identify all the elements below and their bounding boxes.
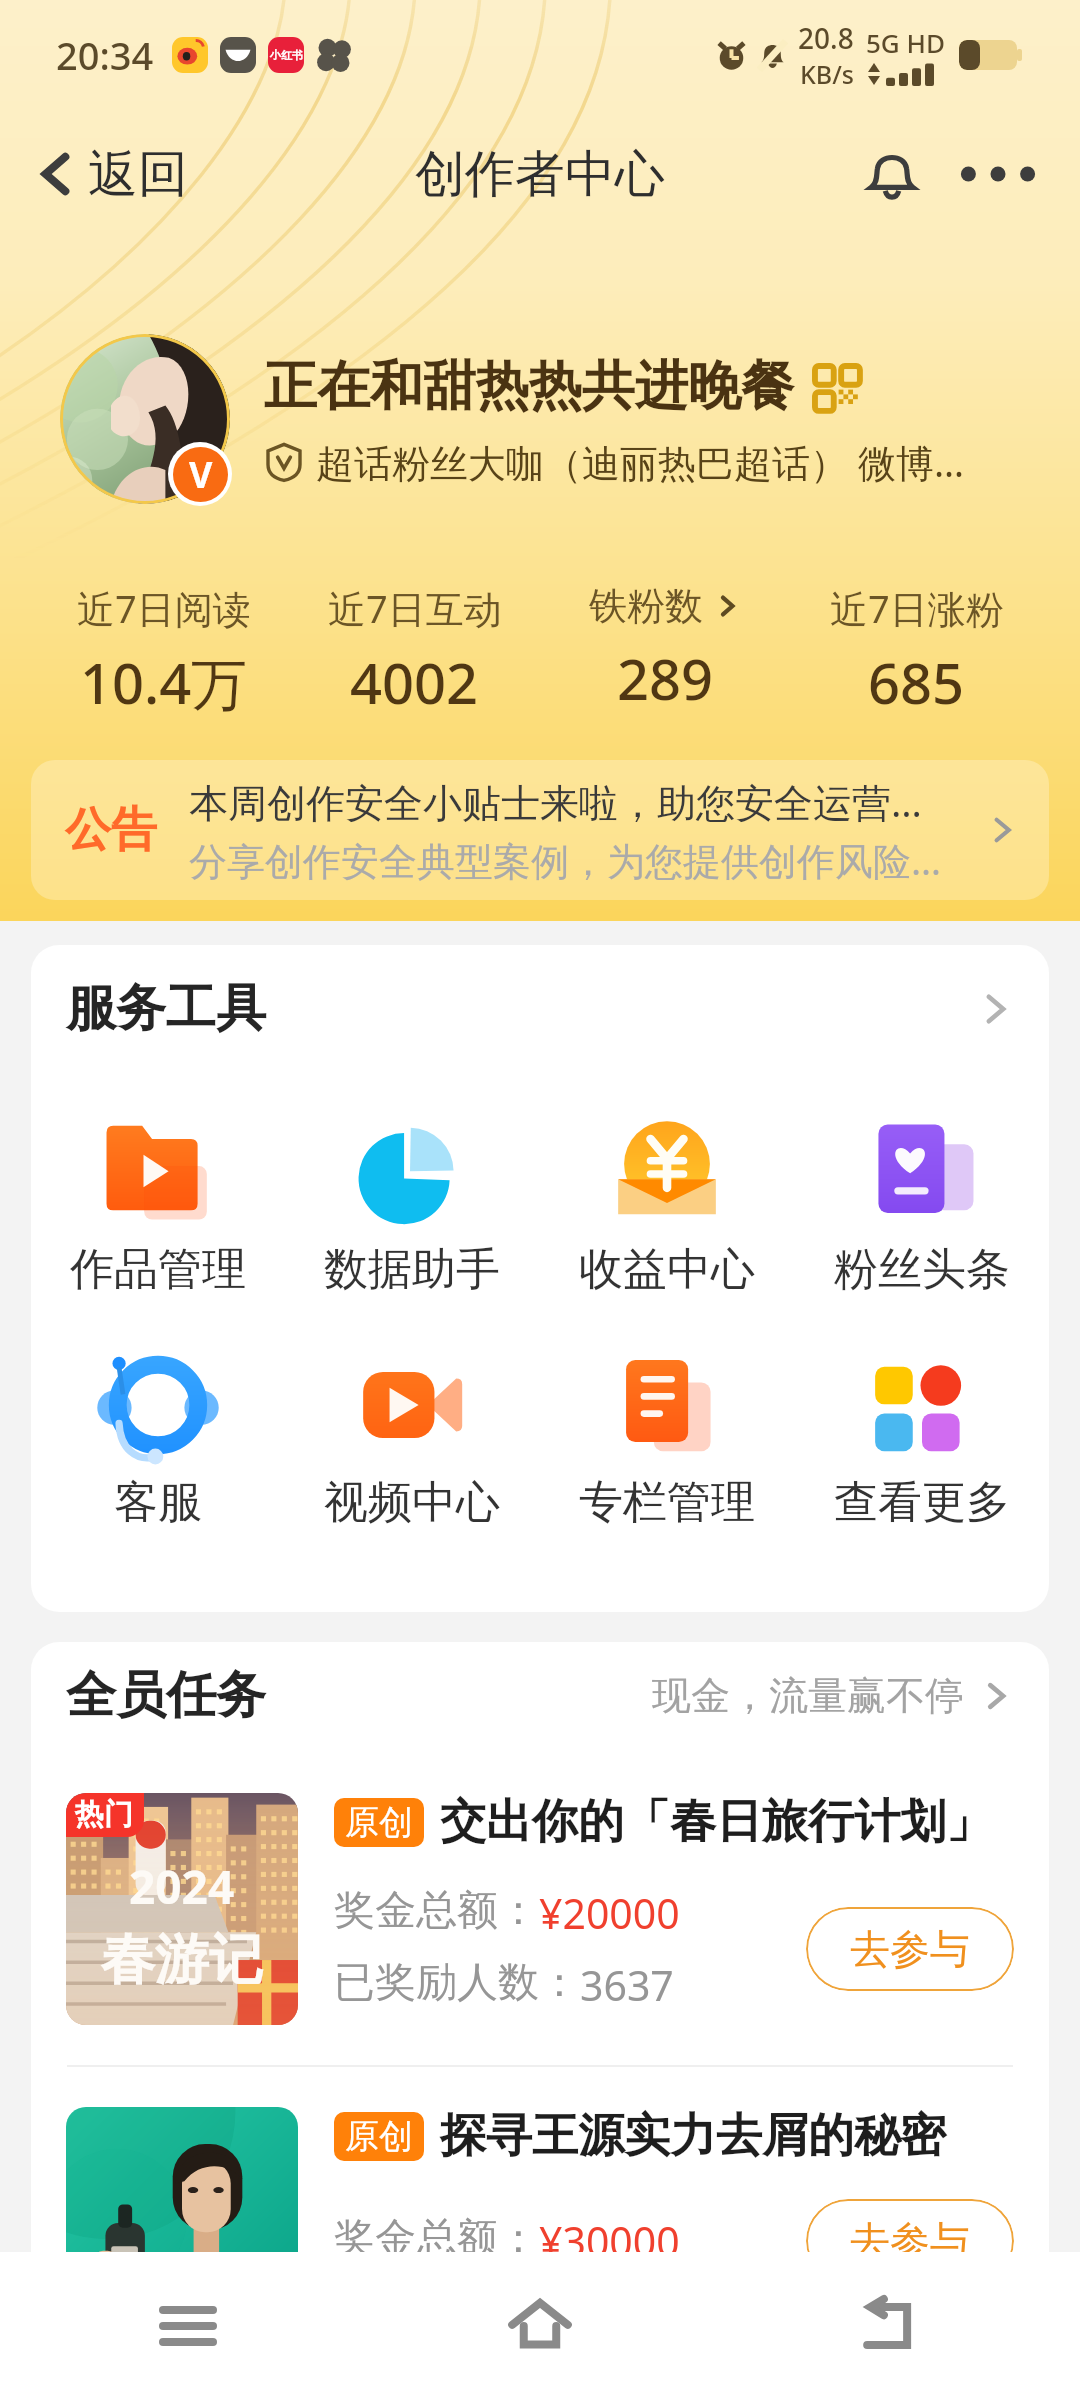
button[interactable]: V: [60, 334, 1040, 506]
button[interactable]: 视频中心: [285, 1339, 539, 1530]
staticText: 3637: [580, 1957, 674, 2013]
button[interactable]: 专栏管理: [539, 1339, 794, 1530]
staticText: 原创: [345, 2115, 413, 2158]
button[interactable]: 去参与: [806, 1907, 1014, 1991]
button[interactable]: Back: [832, 2266, 952, 2386]
button[interactable]: Recent apps: [128, 2266, 248, 2386]
staticText: V: [189, 450, 213, 499]
staticText: 创作者中心: [415, 143, 665, 206]
staticText: 奖金总额：: [334, 2213, 539, 2265]
button[interactable]: 原创: [31, 2067, 1049, 2379]
staticText: 热门: [75, 1796, 133, 1833]
button[interactable]: 公告: [31, 760, 1049, 900]
staticText: 4002: [350, 644, 479, 720]
staticText: 正在和甜热热共进晚餐: [264, 353, 794, 420]
staticText: 近7日互动: [328, 582, 502, 634]
staticText: 专栏管理: [579, 1475, 755, 1530]
staticText: 10.4万: [80, 644, 248, 720]
staticText: ¥30000: [539, 2213, 680, 2269]
staticText: 铁粉数: [589, 582, 703, 630]
staticText: 全员任务: [66, 1664, 266, 1727]
staticText: 原创: [345, 1801, 413, 1844]
staticText: 探寻王源实力去屑的秘密: [440, 2107, 946, 2165]
staticText: 公告: [65, 801, 157, 859]
button[interactable]: 近7日涨粉: [791, 582, 1042, 720]
staticText: 服务工具: [66, 977, 266, 1040]
staticText: 现金，流量赢不停: [652, 1671, 964, 1720]
button[interactable]: 近7日阅读: [38, 582, 289, 720]
staticText: 去参与: [850, 2216, 970, 2266]
button[interactable]: 作品管理: [31, 1106, 285, 1297]
staticText: 去参与: [850, 1924, 970, 1974]
staticText: 近7日阅读: [77, 582, 251, 634]
button[interactable]: More options: [950, 126, 1046, 222]
staticText: 奖金总额：: [334, 1885, 539, 1937]
staticText: 返回: [88, 143, 188, 206]
staticText: 20.8: [798, 19, 854, 57]
staticText: 客服: [114, 1475, 202, 1530]
staticText: 收益中心: [579, 1242, 755, 1297]
button[interactable]: 客服: [31, 1339, 285, 1530]
staticText: ¥20000: [539, 1885, 680, 1941]
staticText: 5G HD: [866, 25, 945, 60]
button[interactable]: 近7日互动: [289, 582, 540, 720]
staticText: 685: [868, 644, 965, 720]
staticText: 2024: [129, 1855, 235, 1918]
staticText: KB/s: [800, 57, 854, 91]
button[interactable]: 热门: [31, 1753, 1049, 2065]
button[interactable]: 服务工具: [31, 977, 1049, 1040]
staticText: 数据助手: [324, 1242, 500, 1297]
button[interactable]: 粉丝头条: [794, 1106, 1049, 1297]
button[interactable]: 数据助手: [285, 1106, 539, 1297]
staticText: 分享创作安全典型案例，为您提供创作风险…: [189, 834, 942, 886]
staticText: 本周创作安全小贴士来啦，助您安全运营…: [189, 775, 922, 828]
button[interactable]: Notifications: [844, 126, 940, 222]
button[interactable]: 去参与: [806, 2199, 1014, 2283]
staticText: 小红书: [270, 48, 303, 62]
staticText: 289: [617, 640, 714, 716]
button[interactable]: 铁粉数: [540, 582, 791, 716]
button[interactable]: 收益中心: [539, 1106, 794, 1297]
staticText: 交出你的「春日旅行计划」: [440, 1793, 992, 1851]
staticText: 已奖励人数：: [334, 1957, 580, 2009]
button[interactable]: 返回: [30, 110, 188, 238]
staticText: 20:34: [56, 29, 154, 81]
staticText: 视频中心: [324, 1475, 500, 1530]
button[interactable]: 全员任务: [31, 1664, 1049, 1727]
staticText: 粉丝头条: [834, 1242, 1010, 1297]
staticText: 春游记: [101, 1926, 263, 1994]
staticText: 作品管理: [70, 1242, 246, 1297]
button[interactable]: 查看更多: [794, 1339, 1049, 1530]
staticText: 查看更多: [834, 1475, 1010, 1530]
staticText: 近7日涨粉: [830, 582, 1004, 634]
staticText: 超话粉丝大咖（迪丽热巴超话） 微博…: [316, 436, 964, 488]
button[interactable]: Home: [480, 2266, 600, 2386]
